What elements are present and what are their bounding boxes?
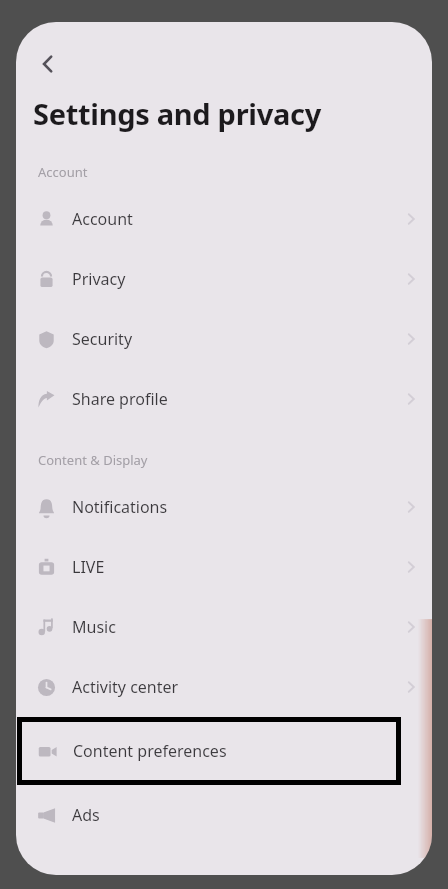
staticText: Activity center bbox=[72, 676, 179, 698]
staticText: LIVE bbox=[72, 556, 105, 578]
button[interactable]: Account bbox=[16, 189, 432, 249]
button[interactable]: Privacy bbox=[16, 249, 432, 309]
staticText: Settings and privacy bbox=[33, 94, 321, 133]
button[interactable]: Back bbox=[24, 40, 72, 88]
staticText: Notifications bbox=[72, 496, 168, 518]
button[interactable]: Content preferences bbox=[17, 717, 401, 785]
staticText: Music bbox=[72, 616, 116, 638]
button[interactable]: Share profile bbox=[16, 369, 432, 429]
staticText: Privacy bbox=[72, 268, 126, 290]
button[interactable]: Activity center bbox=[16, 657, 432, 717]
staticText: Share profile bbox=[72, 388, 168, 410]
staticText: Ads bbox=[72, 804, 100, 826]
button[interactable]: Security bbox=[16, 309, 432, 369]
button[interactable]: Ads bbox=[16, 785, 432, 845]
staticText: Content & Display bbox=[38, 451, 148, 469]
staticText: Security bbox=[72, 328, 133, 350]
staticText: Account bbox=[38, 163, 88, 181]
button[interactable]: Notifications bbox=[16, 477, 432, 537]
button[interactable]: LIVE bbox=[16, 537, 432, 597]
staticText: Content preferences bbox=[73, 740, 227, 762]
button[interactable]: Music bbox=[16, 597, 432, 657]
staticText: Account bbox=[72, 208, 133, 230]
